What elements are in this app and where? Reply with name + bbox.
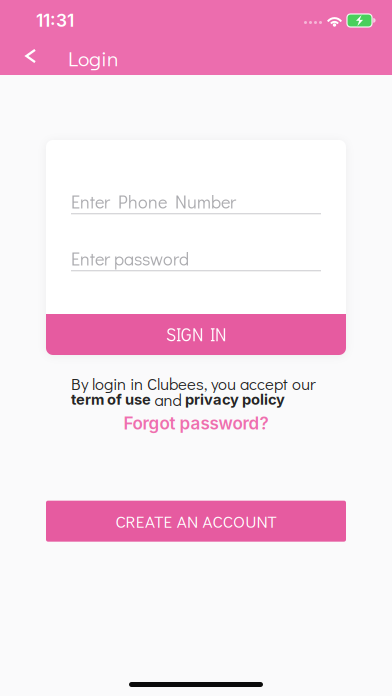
staticText: Enter password bbox=[71, 247, 189, 270]
staticText: Forgot password? bbox=[123, 413, 268, 434]
staticText: Login bbox=[68, 44, 118, 72]
staticText: Enter Phone Number bbox=[71, 190, 236, 213]
staticText: SIGN IN bbox=[166, 323, 226, 346]
button[interactable]: CREATE AN ACCOUNT bbox=[46, 501, 346, 542]
staticText: By login in Clubees, you accept our bbox=[71, 373, 316, 394]
staticText: privacy policy bbox=[185, 391, 285, 408]
button[interactable]: Back bbox=[9, 38, 53, 74]
staticText: term of use bbox=[71, 391, 151, 408]
button[interactable]: privacy policy bbox=[185, 391, 285, 408]
staticText: and bbox=[154, 389, 181, 410]
button[interactable]: Forgot password? bbox=[113, 411, 278, 436]
staticText: CREATE AN ACCOUNT bbox=[115, 510, 277, 532]
button[interactable]: term of use bbox=[71, 391, 151, 408]
staticText: 11:31 bbox=[36, 10, 74, 31]
button[interactable]: SIGN IN bbox=[46, 314, 346, 355]
